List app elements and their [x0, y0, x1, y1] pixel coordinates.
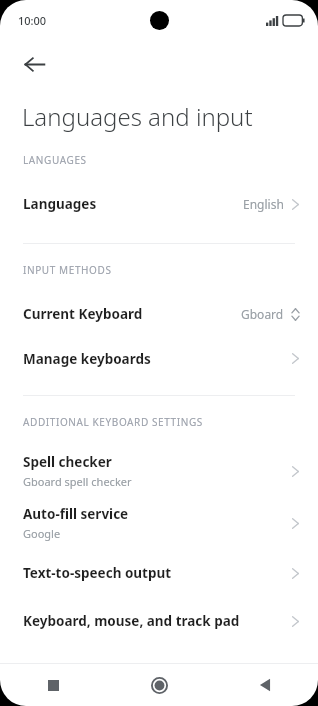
button[interactable]: Recent apps	[0, 664, 106, 706]
staticText: Current Keyboard	[23, 305, 143, 323]
staticText: Keyboard, mouse, and track pad	[23, 612, 240, 630]
button[interactable]: Spell checker	[0, 445, 318, 497]
button[interactable]: Current Keyboard	[0, 293, 318, 335]
staticText: Gboard	[241, 306, 284, 322]
staticText: Google	[23, 526, 61, 541]
staticText: Gboard spell checker	[23, 474, 132, 489]
button[interactable]: Auto-fill service	[0, 497, 318, 549]
button[interactable]: Back	[212, 664, 318, 706]
button[interactable]: Home	[106, 664, 212, 706]
staticText: INPUT METHODS	[23, 263, 112, 277]
staticText: Auto-fill service	[23, 505, 129, 523]
button[interactable]: Manage keyboards	[0, 335, 318, 382]
staticText: Languages and input	[22, 100, 253, 133]
staticText: Manage keyboards	[23, 350, 151, 368]
staticText: 10:00	[18, 13, 47, 28]
staticText: English	[243, 196, 284, 212]
button[interactable]: Back	[10, 40, 58, 88]
staticText: Languages	[23, 195, 97, 213]
staticText: LANGUAGES	[23, 153, 87, 167]
staticText: ADDITIONAL KEYBOARD SETTINGS	[23, 415, 203, 429]
staticText: Spell checker	[23, 453, 112, 471]
button[interactable]: Keyboard, mouse, and track pad	[0, 597, 318, 645]
button[interactable]: Languages	[0, 183, 318, 225]
staticText: Text-to-speech output	[23, 564, 172, 582]
button[interactable]: Text-to-speech output	[0, 549, 318, 597]
